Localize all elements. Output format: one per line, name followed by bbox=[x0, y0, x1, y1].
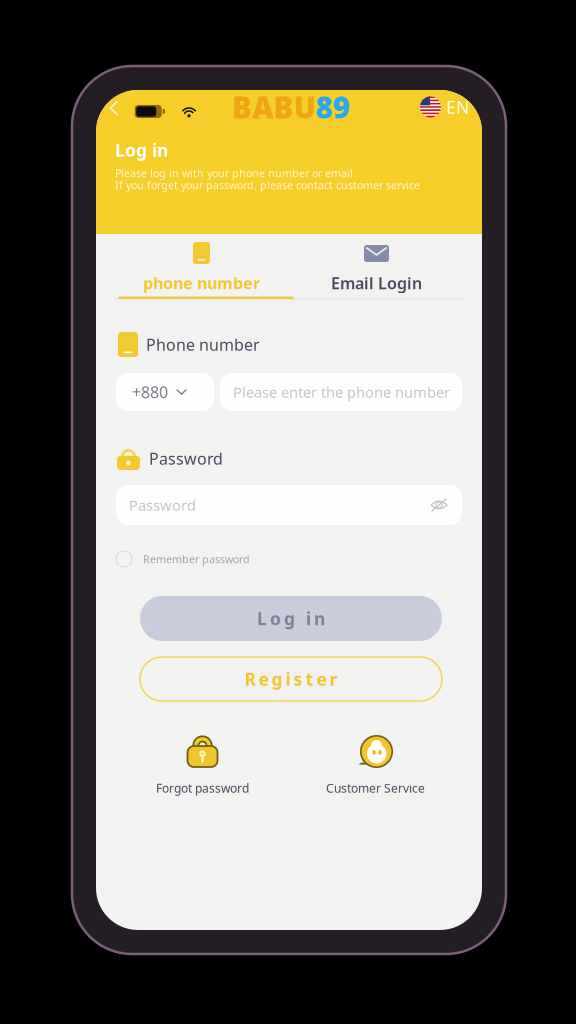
button[interactable]: Remember password bbox=[116, 549, 316, 569]
staticText: EN bbox=[446, 95, 469, 118]
staticText: Log in bbox=[257, 607, 325, 630]
button[interactable]: Email Login bbox=[289, 234, 464, 300]
staticText: phone number bbox=[143, 272, 260, 294]
button[interactable]: Log in bbox=[140, 596, 442, 641]
staticText: +880 bbox=[132, 381, 168, 403]
staticText: Email Login bbox=[331, 272, 422, 294]
staticText: Please log in with your phone number or … bbox=[115, 166, 353, 180]
button[interactable]: Country code +880 bbox=[116, 373, 214, 411]
staticText: Forgot password bbox=[156, 780, 249, 796]
button[interactable]: Language EN bbox=[420, 95, 482, 119]
button[interactable]: Phone number bbox=[220, 373, 462, 411]
staticText: Customer Service bbox=[326, 780, 425, 796]
staticText: Register bbox=[244, 667, 337, 690]
staticText: 89 bbox=[316, 87, 350, 126]
staticText: Password bbox=[129, 495, 196, 515]
staticText: Log in bbox=[115, 138, 168, 161]
staticText: Password bbox=[149, 448, 223, 469]
staticText: Phone number bbox=[146, 334, 260, 355]
staticText: Please enter the phone number bbox=[233, 382, 450, 402]
button[interactable]: Password bbox=[116, 485, 462, 525]
button[interactable]: Back bbox=[106, 99, 124, 117]
staticText: BABU bbox=[232, 87, 316, 126]
button[interactable]: Forgot password bbox=[116, 730, 289, 802]
staticText: Remember password bbox=[143, 552, 250, 566]
button[interactable]: Register bbox=[140, 657, 442, 701]
staticText: If you forget your password, please cont… bbox=[115, 178, 420, 192]
button[interactable]: phone number bbox=[114, 234, 289, 300]
button[interactable]: Customer Service bbox=[289, 730, 462, 802]
